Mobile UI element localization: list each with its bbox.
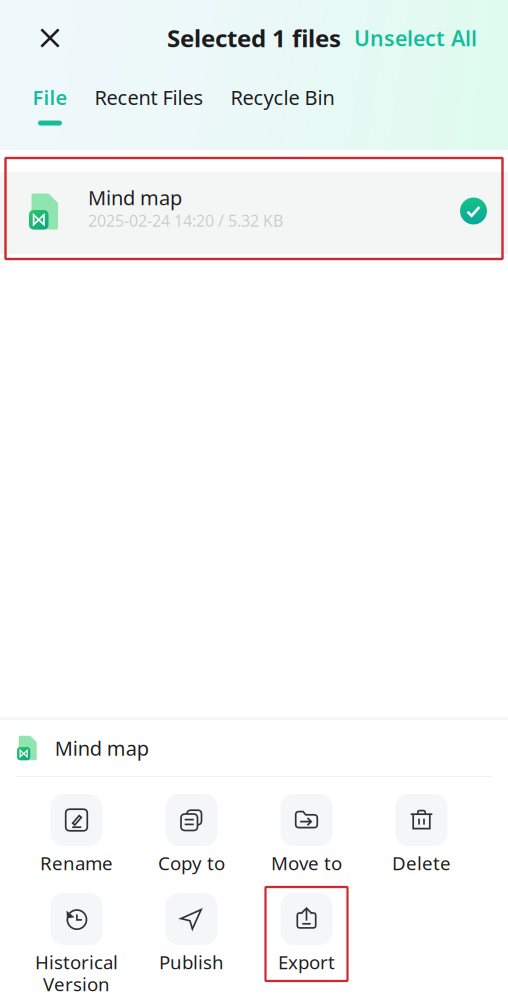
button[interactable]: Move to xyxy=(249,788,364,886)
button[interactable]: Recycle Bin xyxy=(217,76,348,150)
staticText: Mind map xyxy=(88,184,182,211)
button[interactable]: Recent Files xyxy=(81,76,217,150)
staticText: Unselect All xyxy=(354,24,477,52)
staticText: 2025-02-24 14:20 / 5.32 KB xyxy=(88,210,283,231)
staticText: Recycle Bin xyxy=(230,84,334,111)
button[interactable]: Close xyxy=(18,6,82,70)
staticText: Rename xyxy=(40,851,113,875)
staticText: Historical xyxy=(35,950,118,974)
staticText: Move to xyxy=(271,851,342,875)
button[interactable]: File xyxy=(19,76,81,150)
staticText: Recent Files xyxy=(94,84,203,111)
button[interactable]: Copy to xyxy=(134,788,249,886)
staticText: Selected 1 files xyxy=(167,22,341,54)
staticText: Delete xyxy=(392,851,451,875)
button[interactable]: Unselect All xyxy=(342,6,489,70)
staticText: Publish xyxy=(159,950,224,974)
button[interactable]: Rename xyxy=(19,788,134,886)
button[interactable]: Publish xyxy=(134,887,249,985)
button[interactable]: Mind map xyxy=(0,172,508,254)
staticText: Export xyxy=(278,950,335,974)
staticText: Mind map xyxy=(55,735,149,761)
button[interactable]: Historical xyxy=(19,887,134,985)
staticText: File xyxy=(32,84,67,111)
button[interactable]: Export xyxy=(249,887,364,985)
staticText: Copy to xyxy=(158,851,225,875)
staticText: Version xyxy=(43,972,110,996)
button[interactable]: Delete xyxy=(364,788,479,886)
